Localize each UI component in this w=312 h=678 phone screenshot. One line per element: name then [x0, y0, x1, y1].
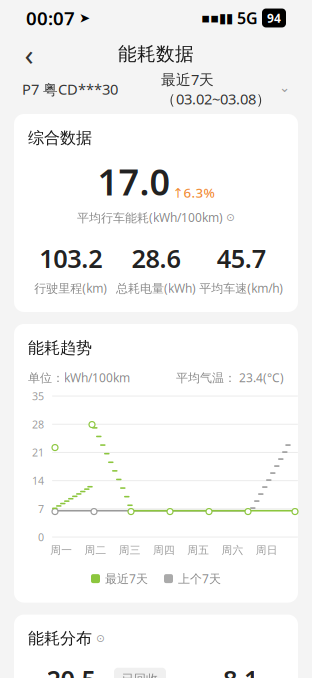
staticText: 28.6	[131, 241, 180, 275]
staticText: 5G	[237, 7, 258, 29]
staticText: ▪▪▮▮	[201, 10, 233, 25]
staticText: 上个7天	[178, 571, 221, 587]
staticText: 周六	[222, 544, 244, 557]
staticText: P7 粤CD***30	[22, 79, 118, 99]
staticText: 周五	[187, 544, 209, 557]
staticText: 能耗数据	[118, 42, 194, 65]
staticText: ➤	[79, 10, 90, 25]
staticText: 17.0	[97, 158, 170, 205]
staticText: 45.7	[217, 241, 266, 275]
button[interactable]: 能耗分布	[28, 629, 105, 648]
staticText: 28	[32, 417, 44, 431]
staticText: 00:07	[26, 6, 75, 30]
staticText: 最近7天（03.02~03.08）	[161, 69, 271, 108]
staticText: 总耗电量(kWh)	[116, 280, 196, 296]
staticText: 35	[32, 389, 44, 403]
staticText: 周一	[50, 544, 72, 557]
staticText: 21	[32, 445, 44, 460]
staticText: 周日	[256, 544, 278, 557]
staticText: 能耗趋势	[28, 338, 92, 358]
staticText: 0	[38, 530, 44, 544]
staticText: 行驶里程(km)	[34, 280, 107, 296]
staticText: 单位：kWh/100km	[28, 370, 130, 385]
staticText: ⊙	[96, 632, 105, 644]
staticText: 周三	[119, 544, 141, 557]
staticText: 103.2	[39, 241, 102, 275]
button[interactable]: 最近7天（03.02~03.08）	[161, 69, 290, 108]
button[interactable]: Back	[12, 37, 46, 71]
button[interactable]: 平均行车能耗(kWh/100km)	[77, 209, 235, 225]
button[interactable]: P7 粤CD***30	[22, 79, 118, 99]
staticText: 平均车速(km/h)	[199, 280, 283, 296]
staticText: 周二	[84, 544, 106, 557]
staticText: 94	[267, 10, 281, 26]
staticText: 8.1	[223, 662, 258, 678]
staticText: 最近7天	[105, 571, 148, 587]
staticText: ⊙	[226, 211, 235, 223]
staticText: 周四	[153, 544, 175, 557]
staticText: 20.5	[46, 662, 95, 678]
staticText: 7	[38, 502, 44, 516]
staticText: 14	[32, 474, 44, 488]
staticText: 平均行车能耗(kWh/100km)	[77, 209, 223, 225]
staticText: 综合数据	[28, 128, 92, 148]
staticText: 已回收	[122, 672, 158, 678]
staticText: ↑6.3%	[172, 184, 214, 201]
staticText: ⌄	[279, 80, 290, 95]
staticText: ‹	[24, 34, 33, 73]
staticText: 平均气温： 23.4(°C)	[176, 370, 284, 385]
staticText: 能耗分布	[28, 629, 92, 648]
